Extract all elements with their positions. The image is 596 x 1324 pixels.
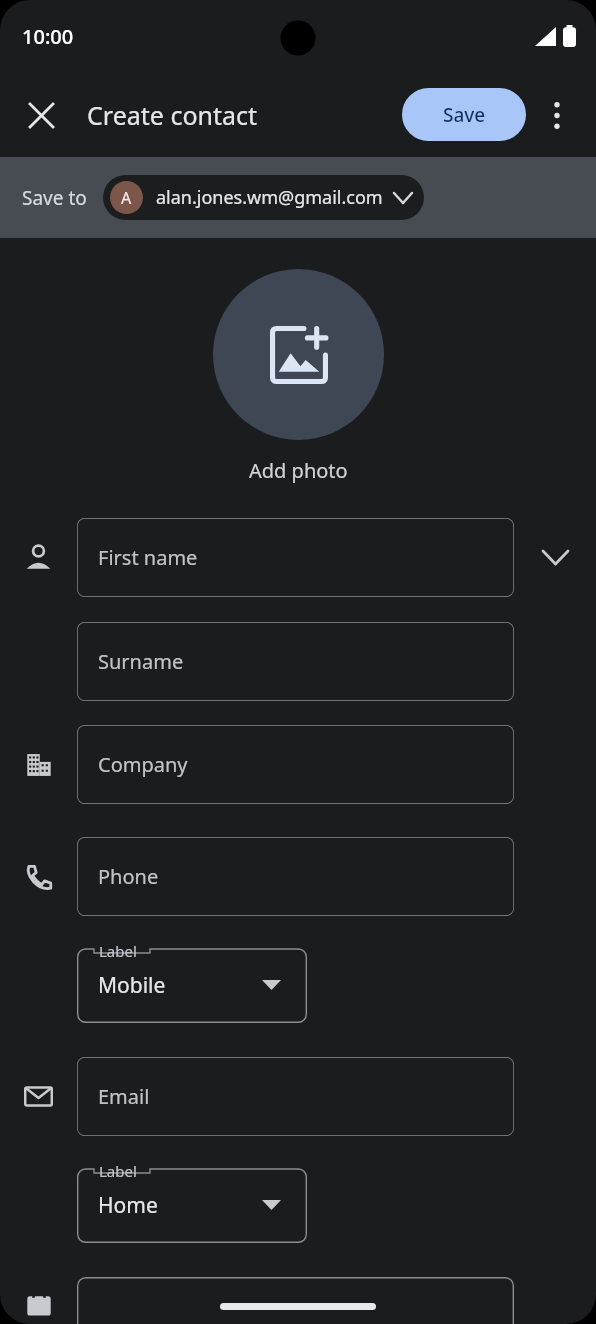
button[interactable]: Email [77, 1057, 514, 1136]
button[interactable]: More options [534, 92, 580, 138]
button[interactable]: Save [402, 88, 526, 141]
staticText: 10:00 [22, 23, 74, 50]
staticText: alan.jones.wm@gmail.com [156, 185, 383, 210]
staticText: First name [98, 544, 198, 571]
button[interactable]: Label [77, 1158, 307, 1243]
button[interactable]: Company [77, 725, 514, 804]
button[interactable]: Phone [77, 837, 514, 916]
staticText: A [121, 187, 132, 209]
staticText: Add photo [249, 457, 348, 484]
button[interactable]: Expand name fields [514, 518, 596, 597]
staticText: Save to [22, 185, 87, 211]
staticText: Mobile [98, 971, 166, 1000]
staticText: Surname [98, 648, 184, 675]
staticText: Email [98, 1083, 150, 1110]
button[interactable]: First name [77, 518, 514, 597]
button[interactable]: Label [77, 938, 307, 1023]
staticText: Phone [98, 863, 159, 890]
button[interactable] [77, 1277, 514, 1317]
staticText: Home [98, 1191, 158, 1220]
staticText: Save [443, 102, 486, 128]
button[interactable]: A [103, 175, 424, 220]
staticText: Label [99, 941, 137, 961]
staticText: Label [99, 1161, 137, 1181]
button[interactable]: Add photo [213, 269, 384, 440]
staticText: Create contact [87, 98, 258, 132]
button[interactable]: Surname [77, 622, 514, 701]
button[interactable]: Close [16, 90, 66, 140]
staticText: Company [98, 751, 188, 778]
